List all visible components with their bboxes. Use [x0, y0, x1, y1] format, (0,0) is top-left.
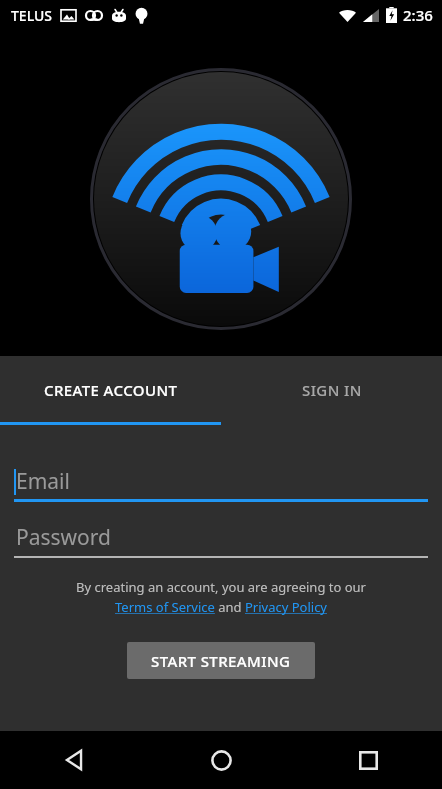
button[interactable]: Home: [148, 731, 295, 789]
button[interactable]: SIGN IN: [221, 356, 442, 424]
button[interactable]: Recent apps: [295, 731, 442, 789]
staticText: TELUS: [11, 6, 53, 25]
button[interactable]: Email: [14, 460, 428, 502]
staticText: SIGN IN: [302, 380, 362, 400]
staticText: Email: [16, 467, 70, 496]
staticText: Password: [16, 523, 111, 552]
button[interactable]: Back: [0, 731, 148, 789]
button[interactable]: Terms of Service and Privacy Policy: [115, 598, 327, 616]
button[interactable]: CREATE ACCOUNT: [0, 356, 221, 424]
staticText: By creating an account, you are agreeing…: [76, 578, 366, 596]
staticText: CREATE ACCOUNT: [44, 380, 178, 400]
button[interactable]: START STREAMING: [127, 642, 315, 679]
staticText: 2:36: [403, 5, 433, 25]
staticText: START STREAMING: [151, 651, 291, 671]
button[interactable]: Password: [14, 516, 428, 558]
